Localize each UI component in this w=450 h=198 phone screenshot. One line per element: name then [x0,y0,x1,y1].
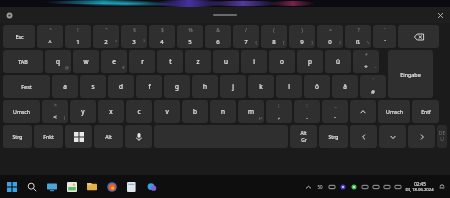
button[interactable]: Alt [94,125,123,148]
button[interactable]: _ [322,100,348,123]
button[interactable]: Store [122,176,142,198]
button[interactable]: Show hidden icons [303,176,314,198]
button[interactable]: ' [360,75,386,98]
button[interactable]: ö [304,75,330,98]
button[interactable]: % [177,25,203,48]
button[interactable]: Umsch [378,100,410,123]
button[interactable]: ) [289,25,315,48]
button[interactable]: Battery [392,176,403,198]
button[interactable]: : [294,100,320,123]
button[interactable]: Settings [4,10,15,21]
button[interactable]: Umsch [3,100,40,123]
button[interactable]: > [42,100,68,123]
button[interactable]: App [142,176,162,198]
button[interactable]: k [248,75,274,98]
button[interactable]: ` [373,25,396,48]
button[interactable]: Volume [381,176,392,198]
button[interactable]: / [233,25,259,48]
button[interactable]: Fnkt [34,125,63,148]
staticText: ä [343,82,347,91]
button[interactable]: § [121,25,147,48]
button[interactable]: Task view [42,176,62,198]
button[interactable]: Fest [3,75,50,98]
button[interactable]: i [241,50,267,73]
button[interactable]: OneDrive [337,176,348,198]
button[interactable]: d [108,75,134,98]
button[interactable]: Left [350,125,377,148]
button[interactable]: f [136,75,162,98]
button[interactable]: $ [149,25,175,48]
button[interactable]: m [238,100,264,123]
button[interactable]: Strg [319,125,348,148]
button[interactable]: " [93,25,119,48]
staticText: : [306,102,308,109]
button[interactable]: * [353,50,379,73]
button[interactable]: Search [22,176,42,198]
button[interactable]: a [52,75,78,98]
button[interactable]: n [210,100,236,123]
button[interactable]: Esc [3,25,35,48]
button[interactable]: Right [408,125,435,148]
button[interactable]: p [297,50,323,73]
staticText: ^ [48,38,52,46]
button[interactable]: Backspace [398,25,439,48]
staticText: r [141,57,144,66]
button[interactable]: v [154,100,180,123]
staticText: y [81,107,85,116]
button[interactable]: ä [332,75,358,98]
button[interactable]: Notifications [436,176,447,198]
button[interactable]: Alt [290,125,317,148]
button[interactable]: Keyboard [359,176,370,198]
button[interactable]: Windows [65,125,92,148]
button[interactable]: z [185,50,211,73]
button[interactable]: j [220,75,246,98]
button[interactable]: Up [350,100,376,123]
button[interactable]: ( [261,25,287,48]
button[interactable]: ; [266,100,292,123]
button[interactable]: = [317,25,343,48]
button[interactable]: Network [314,176,326,198]
button[interactable]: w [73,50,99,73]
staticText: ß [356,38,360,46]
button[interactable]: Chrome [348,176,359,198]
button[interactable]: Strg [3,125,32,148]
button[interactable]: Bluetooth [326,176,337,198]
button[interactable]: y [70,100,96,123]
button[interactable]: TAB [3,50,43,73]
button[interactable]: Start [2,176,22,198]
button[interactable]: File Explorer [82,176,102,198]
button[interactable]: Eingabe [388,50,433,98]
button[interactable]: Date and time [405,181,434,193]
staticText: i [253,57,255,66]
staticText: e [112,57,116,66]
button[interactable]: o [269,50,295,73]
button[interactable]: g [164,75,190,98]
button[interactable]: ? [345,25,371,48]
button[interactable]: b [182,100,208,123]
button[interactable]: Entf [412,100,439,123]
button[interactable]: Microphone [125,125,152,148]
button[interactable]: Photos [62,176,82,198]
button[interactable]: s [80,75,106,98]
button[interactable]: Firefox [102,176,122,198]
button[interactable]: ° [37,25,63,48]
button[interactable]: ü [325,50,351,73]
button[interactable]: u [213,50,239,73]
button[interactable]: x [98,100,124,123]
button[interactable]: DEU [437,125,447,148]
staticText: 7 [244,38,248,46]
button[interactable]: q [45,50,71,73]
button[interactable]: & [205,25,231,48]
button[interactable]: c [126,100,152,123]
button[interactable]: Close [435,10,446,21]
button[interactable]: h [192,75,218,98]
button[interactable]: r [129,50,155,73]
button[interactable]: l [276,75,302,98]
button[interactable]: Down [379,125,406,148]
button[interactable]: ! [65,25,91,48]
button[interactable]: e [101,50,127,73]
button[interactable]: t [157,50,183,73]
staticText: ; [278,102,280,109]
button[interactable]: Display [370,176,381,198]
